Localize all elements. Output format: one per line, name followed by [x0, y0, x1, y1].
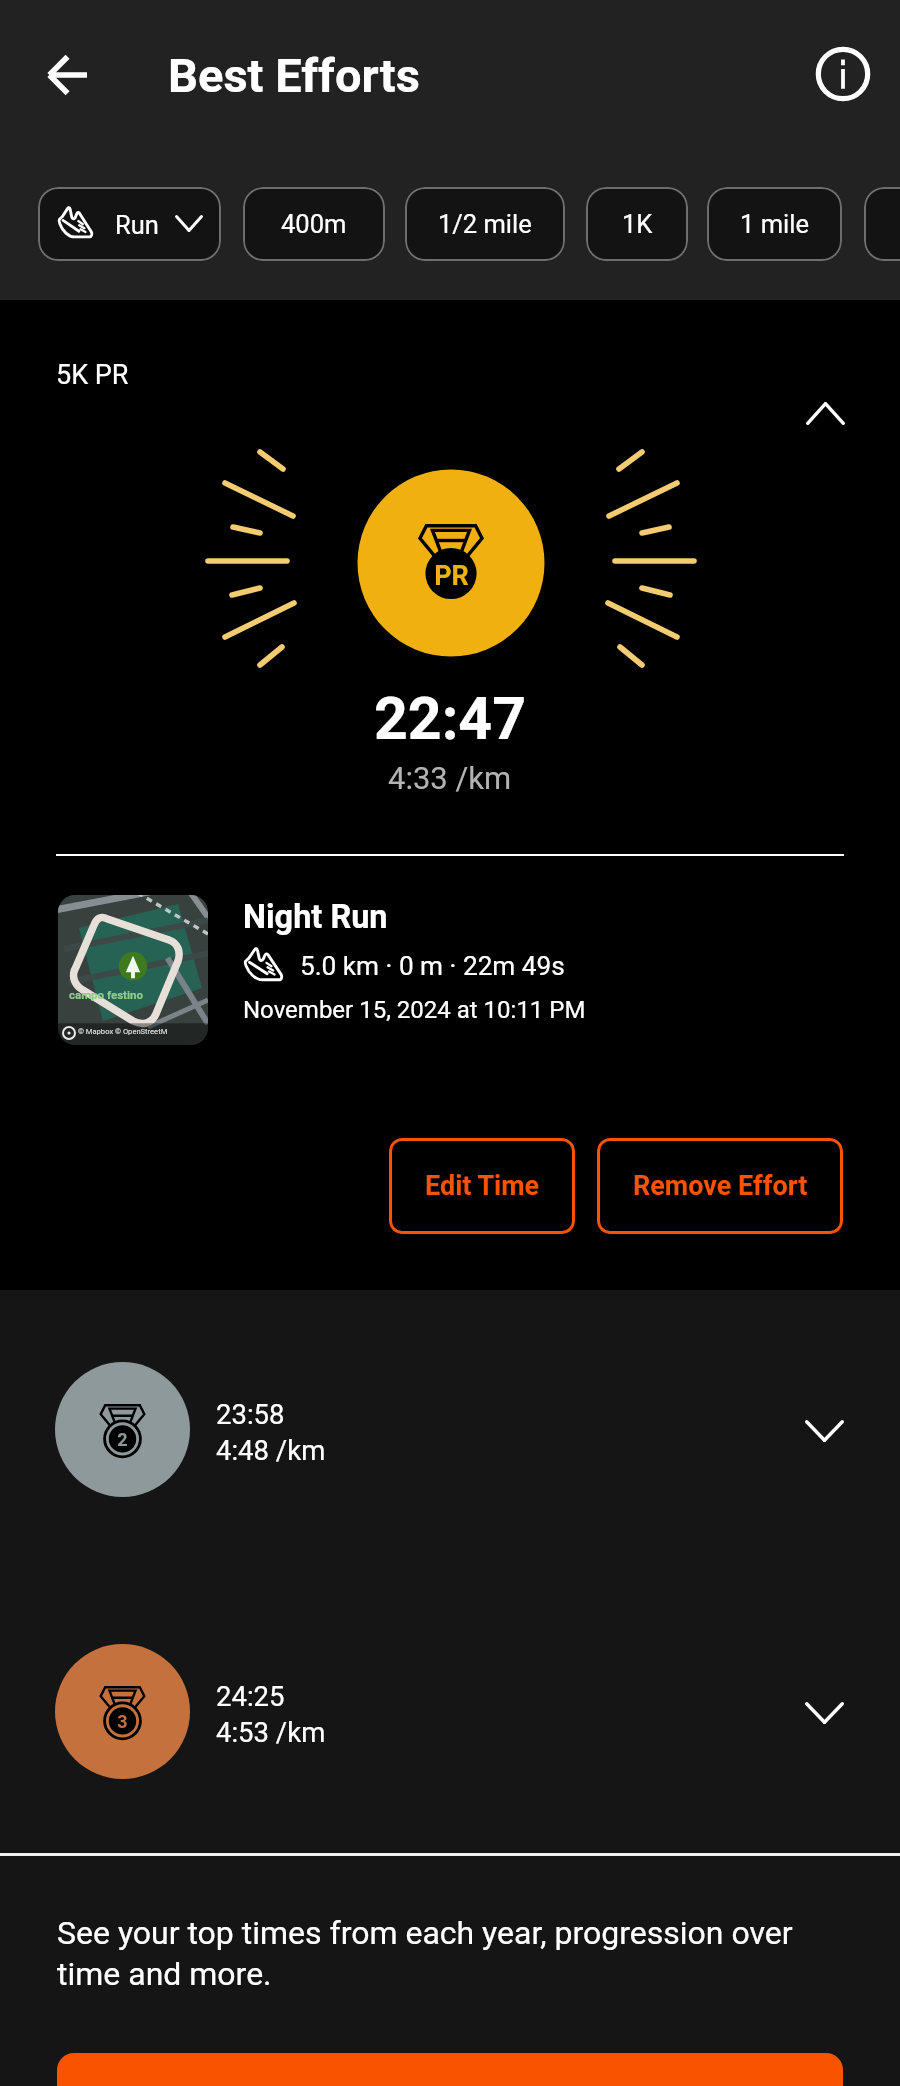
staticText: Edit Time: [425, 1170, 540, 1202]
staticText: © Mapbox © OpenStreetM: [78, 1027, 168, 1036]
staticText: 4:33 /km: [388, 760, 512, 796]
staticText: PR: [434, 560, 469, 592]
button[interactable]: 1K: [586, 187, 688, 261]
button[interactable]: 1/2 mile: [405, 187, 565, 261]
staticText: Night Run: [243, 898, 388, 936]
staticText: 5K PR: [56, 359, 129, 391]
staticText: 1K: [622, 209, 653, 239]
button[interactable]: 3: [0, 1604, 900, 1819]
staticText: 1/2 mile: [438, 209, 532, 239]
button[interactable]: Edit Time: [389, 1138, 575, 1234]
staticText: 2: [117, 1429, 128, 1450]
button[interactable]: Collapse: [789, 377, 861, 449]
staticText: November 15, 2024 at 10:11 PM: [243, 996, 586, 1024]
staticText: 4:53 /km: [216, 1716, 326, 1748]
button[interactable]: Run: [38, 187, 221, 261]
button[interactable]: Back: [22, 30, 112, 120]
staticText: 1 mile: [740, 209, 809, 239]
staticText: 400m: [281, 209, 347, 239]
staticText: Run: [115, 210, 159, 240]
button[interactable]: 400m: [243, 187, 385, 261]
staticText: 5.0 km · 0 m · 22m 49s: [300, 951, 565, 982]
staticText: Remove Effort: [633, 1170, 808, 1202]
staticText: 4:48 /km: [216, 1434, 326, 1466]
button[interactable]: Information: [803, 34, 883, 114]
button[interactable]: 2: [0, 1322, 900, 1537]
staticText: See your top times from each year, progr…: [57, 1914, 817, 1993]
staticText: campo festino: [69, 988, 143, 1001]
button[interactable]: Remove Effort: [597, 1138, 843, 1234]
staticText: 22:47: [374, 684, 527, 753]
staticText: 3: [117, 1711, 128, 1732]
staticText: 23:58: [216, 1398, 285, 1430]
staticText: 24:25: [216, 1680, 285, 1712]
button[interactable]: 2 mile: [864, 187, 900, 261]
staticText: Best Efforts: [168, 48, 420, 103]
button[interactable]: Subscribe: [57, 2053, 843, 2086]
button[interactable]: 1 mile: [707, 187, 842, 261]
